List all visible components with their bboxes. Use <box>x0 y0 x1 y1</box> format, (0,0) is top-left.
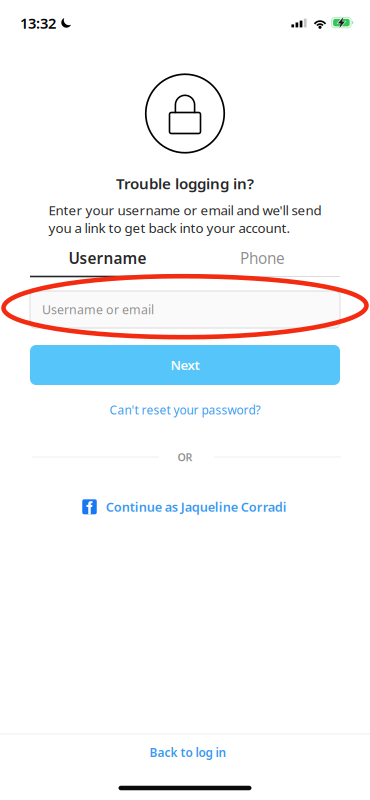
button[interactable]: Username <box>30 243 185 273</box>
staticText: Can't reset your password? <box>109 402 260 418</box>
button[interactable]: Continue as Jaqueline Corradi <box>82 494 287 520</box>
staticText: Phone <box>240 248 285 268</box>
staticText: Next <box>170 356 199 374</box>
staticText: OR <box>177 450 192 464</box>
button[interactable]: Phone <box>185 243 340 273</box>
staticText: Continue as Jaqueline Corradi <box>106 498 287 515</box>
staticText: 13:32 <box>20 13 56 33</box>
staticText: Trouble logging in? <box>116 173 254 194</box>
button[interactable]: Next <box>30 345 340 385</box>
staticText: Username or email <box>42 301 154 318</box>
button[interactable]: Back to log in <box>3 731 370 773</box>
staticText: Back to log in <box>149 745 226 760</box>
staticText: Enter your username or email and we'll s… <box>48 201 321 237</box>
staticText: Username <box>68 248 146 268</box>
button[interactable]: Can't reset your password? <box>85 398 285 422</box>
